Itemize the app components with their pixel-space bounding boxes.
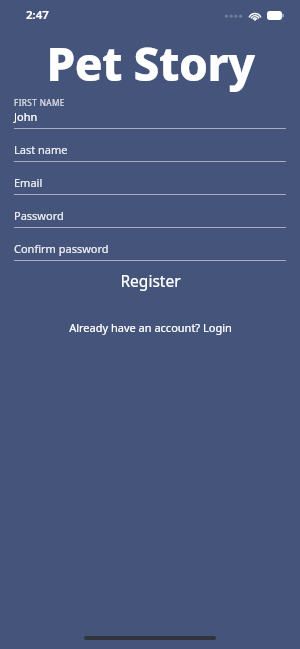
staticText: Already have an account? Login (69, 320, 232, 335)
button[interactable]: Already have an account? Login (0, 313, 300, 341)
button[interactable]: Email (14, 175, 286, 195)
staticText: FIRST NAME (14, 97, 65, 108)
button[interactable]: FIRST NAME (14, 97, 286, 129)
staticText: Password (14, 208, 64, 223)
staticText: 2:47 (26, 7, 49, 23)
staticText: Confirm password (14, 241, 109, 256)
staticText: Pet Story (46, 32, 255, 95)
staticText: John (14, 109, 38, 124)
button[interactable]: Register (0, 261, 300, 299)
staticText: Register (120, 270, 181, 291)
staticText: Last name (14, 142, 68, 157)
staticText: Email (14, 175, 43, 190)
button[interactable]: Confirm password (14, 241, 286, 261)
button[interactable]: Last name (14, 142, 286, 162)
button[interactable]: Password (14, 208, 286, 228)
